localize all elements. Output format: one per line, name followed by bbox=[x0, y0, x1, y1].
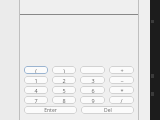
staticText: 6 bbox=[91, 87, 95, 94]
button[interactable]: ) bbox=[52, 66, 76, 74]
button[interactable]: 1 bbox=[24, 76, 48, 84]
staticText: 5 bbox=[62, 87, 66, 94]
button[interactable]: − bbox=[109, 76, 134, 84]
button[interactable]: 6 bbox=[80, 86, 105, 94]
staticText: Del bbox=[104, 107, 112, 114]
staticText: Enter bbox=[44, 107, 57, 114]
staticText: 7 bbox=[34, 97, 38, 104]
button[interactable]: + bbox=[109, 66, 134, 74]
button[interactable]: 8 bbox=[52, 96, 76, 104]
staticText: ) bbox=[63, 67, 65, 74]
staticText: / bbox=[120, 97, 123, 104]
button[interactable]: 4 bbox=[24, 86, 48, 94]
staticText: 3 bbox=[91, 77, 95, 84]
button[interactable]: * bbox=[109, 86, 134, 94]
button[interactable]: ( bbox=[24, 66, 48, 74]
staticText: + bbox=[120, 67, 124, 74]
staticText: * bbox=[120, 87, 124, 94]
button[interactable]: 9 bbox=[80, 96, 105, 104]
button[interactable]: / bbox=[109, 96, 134, 104]
button[interactable]: 5 bbox=[52, 86, 76, 94]
staticText: 1 bbox=[34, 77, 38, 84]
button[interactable]: Del bbox=[81, 106, 134, 114]
staticText: − bbox=[120, 77, 124, 84]
staticText: 2 bbox=[62, 77, 66, 84]
button[interactable]: 3 bbox=[80, 76, 105, 84]
button[interactable]: Enter bbox=[24, 106, 77, 114]
button[interactable]: Blank key bbox=[80, 66, 105, 74]
button[interactable]: 2 bbox=[52, 76, 76, 84]
staticText: ( bbox=[35, 67, 37, 74]
staticText: 4 bbox=[34, 87, 38, 94]
staticText: 9 bbox=[91, 97, 95, 104]
button[interactable]: 7 bbox=[24, 96, 48, 104]
staticText: 8 bbox=[62, 97, 66, 104]
